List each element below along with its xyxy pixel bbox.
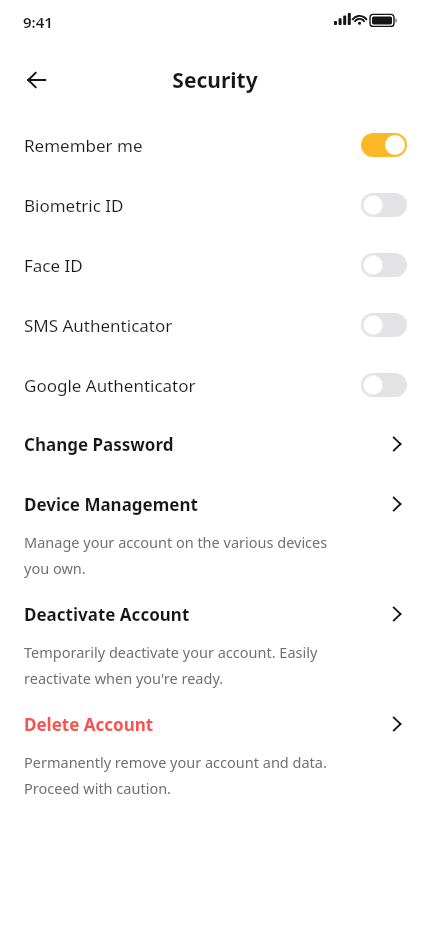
staticText: you own. [24, 558, 430, 578]
staticText: Google Authenticator [24, 374, 361, 397]
button[interactable]: Deactivate Account [0, 590, 430, 638]
staticText: Manage your account on the various devic… [24, 532, 430, 552]
button[interactable]: Device Management [0, 480, 430, 528]
button[interactable]: Remember me [0, 119, 430, 171]
staticText: Security [172, 66, 258, 95]
button[interactable]: Back [15, 58, 59, 102]
staticText: Delete Account [24, 713, 388, 736]
button[interactable]: Face ID [0, 239, 430, 291]
staticText: Deactivate Account [24, 603, 388, 626]
button[interactable]: Google Authenticator [0, 359, 430, 411]
button[interactable]: SMS Authenticator [0, 299, 430, 351]
button[interactable]: Biometric ID [0, 179, 430, 231]
staticText: Temporarily deactivate your account. Eas… [24, 642, 430, 662]
staticText: Biometric ID [24, 194, 361, 217]
staticText: 9:41 [23, 12, 53, 32]
staticText: reactivate when you're ready. [24, 668, 430, 688]
staticText: Remember me [24, 134, 361, 157]
staticText: Change Password [24, 433, 388, 456]
button[interactable]: Delete Account [0, 700, 430, 748]
staticText: Permanently remove your account and data… [24, 752, 430, 772]
staticText: Proceed with caution. [24, 778, 430, 798]
staticText: Face ID [24, 254, 361, 277]
button[interactable]: Change Password [0, 420, 430, 468]
staticText: SMS Authenticator [24, 314, 361, 337]
staticText: Device Management [24, 493, 388, 516]
